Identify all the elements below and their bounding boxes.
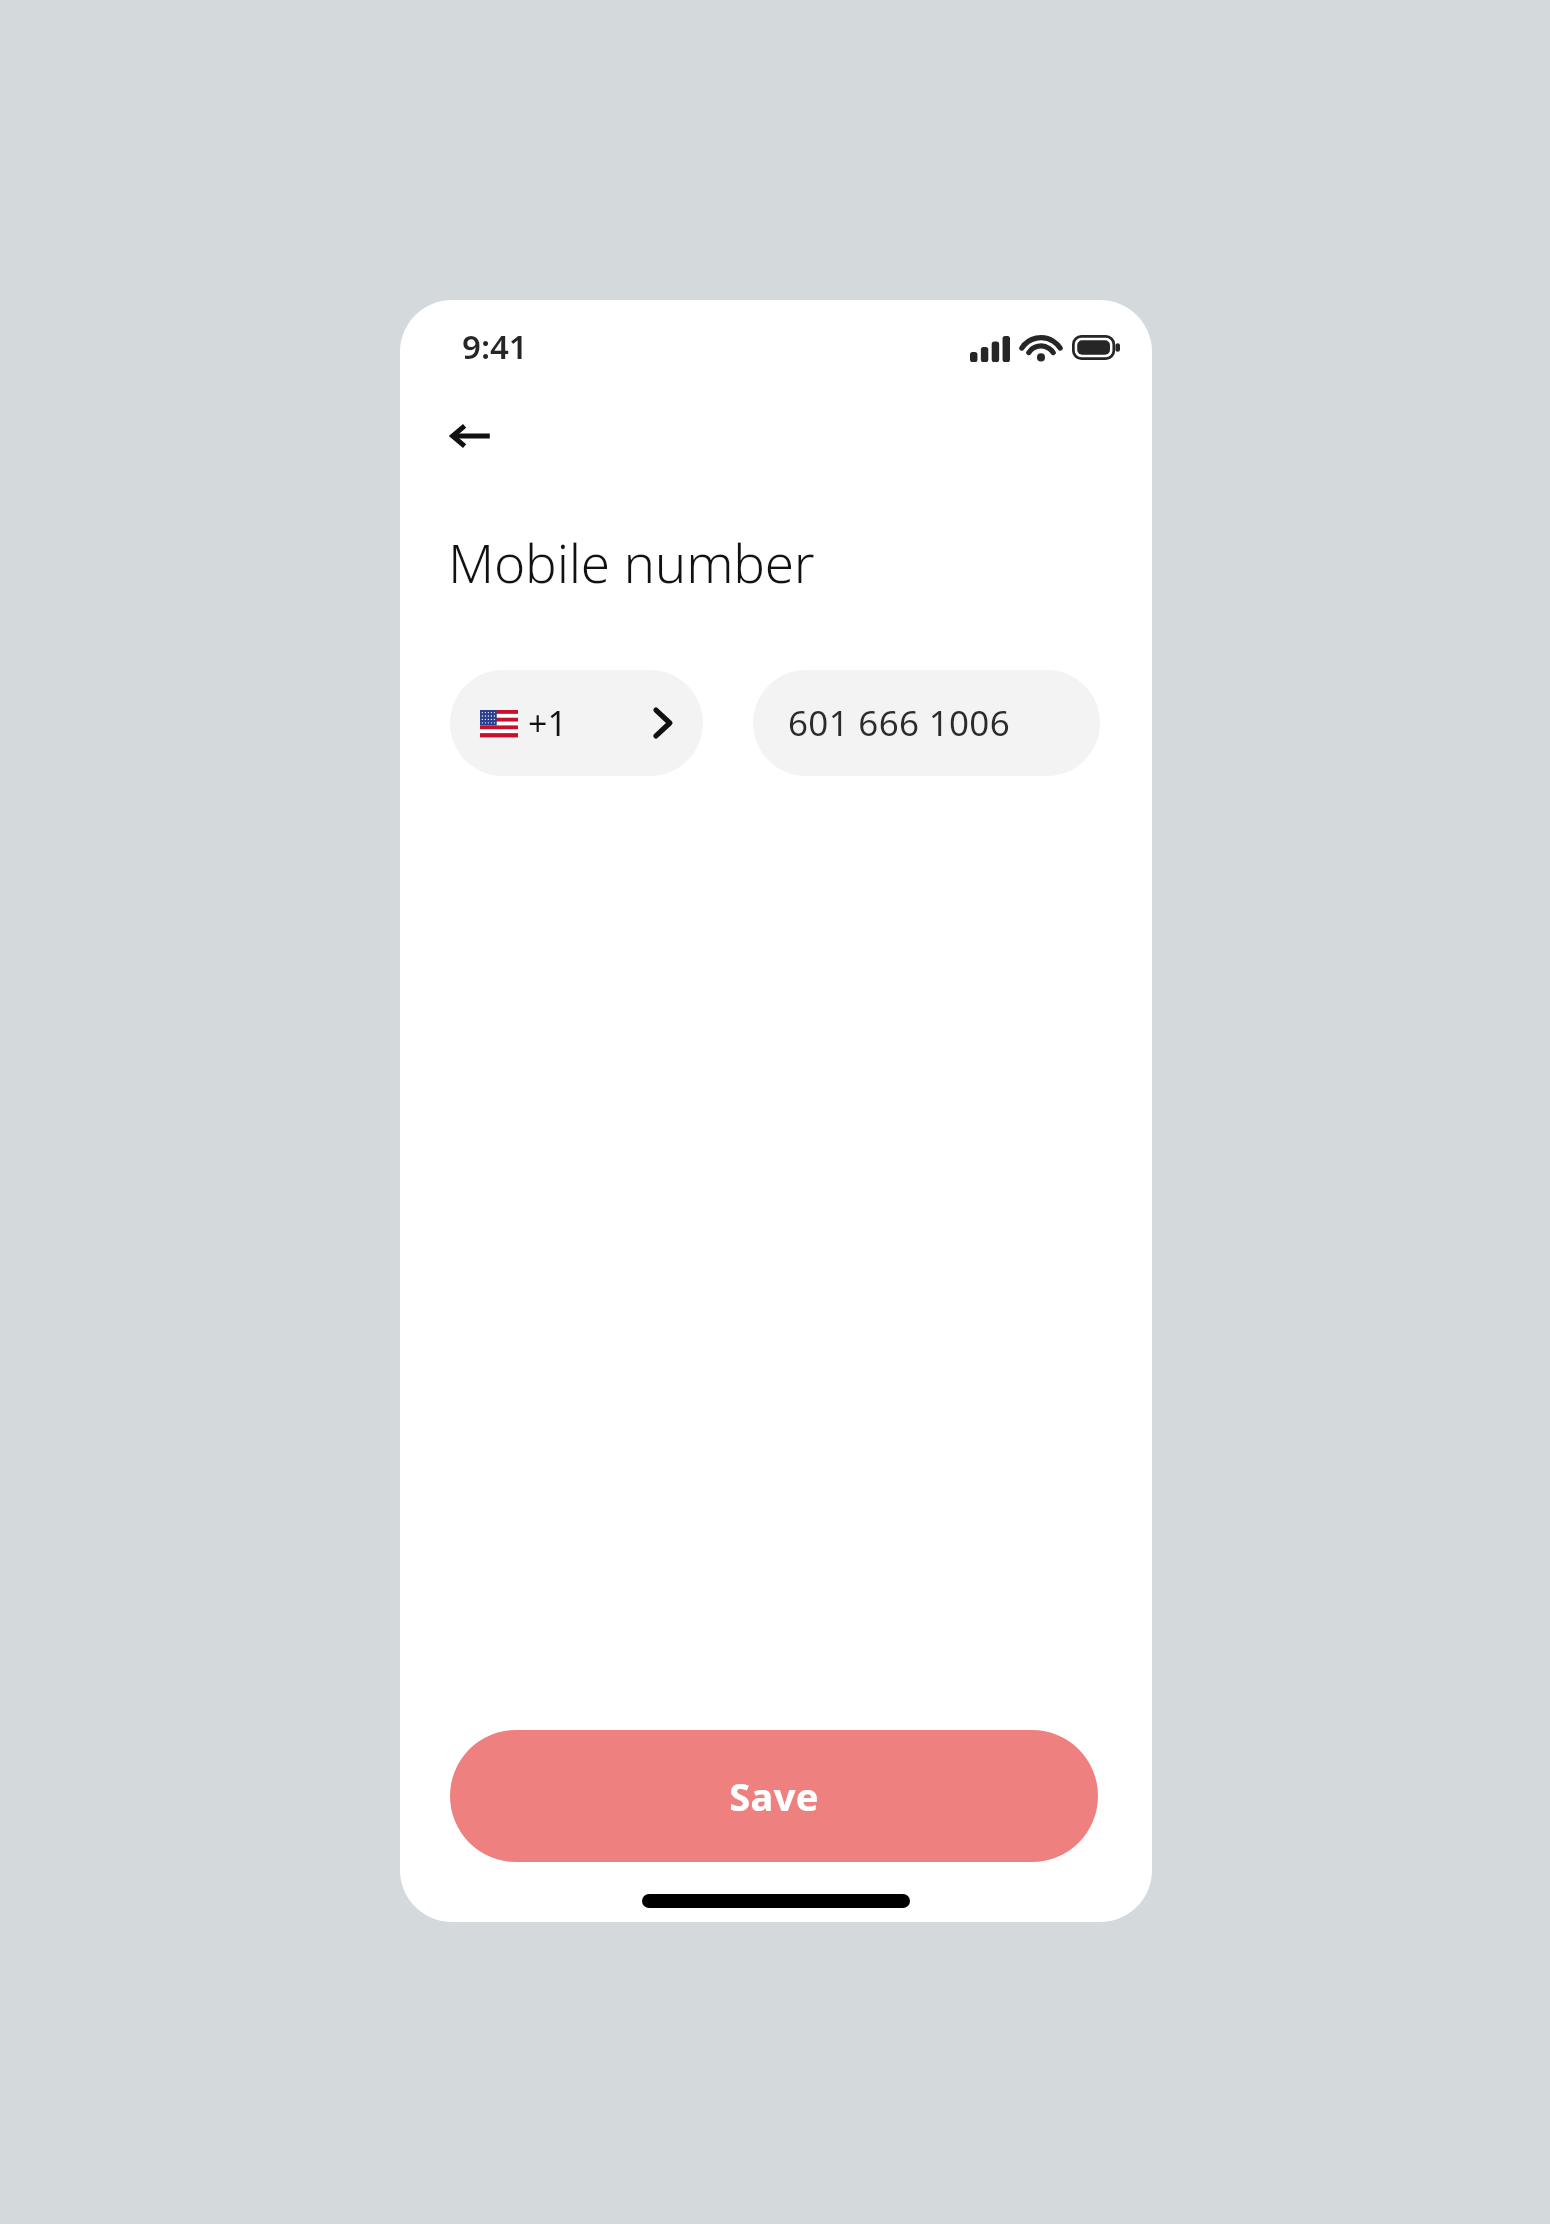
staticText: Save: [729, 1770, 819, 1822]
staticText: 9:41: [462, 324, 528, 368]
staticText: 601 666 1006: [788, 699, 1011, 747]
button[interactable]: 601 666 1006: [753, 670, 1100, 776]
button[interactable]: Save: [450, 1730, 1098, 1862]
staticText: +1: [528, 700, 567, 746]
staticText: Mobile number: [448, 526, 815, 598]
button[interactable]: +1: [450, 670, 703, 776]
button[interactable]: Back: [440, 405, 502, 467]
